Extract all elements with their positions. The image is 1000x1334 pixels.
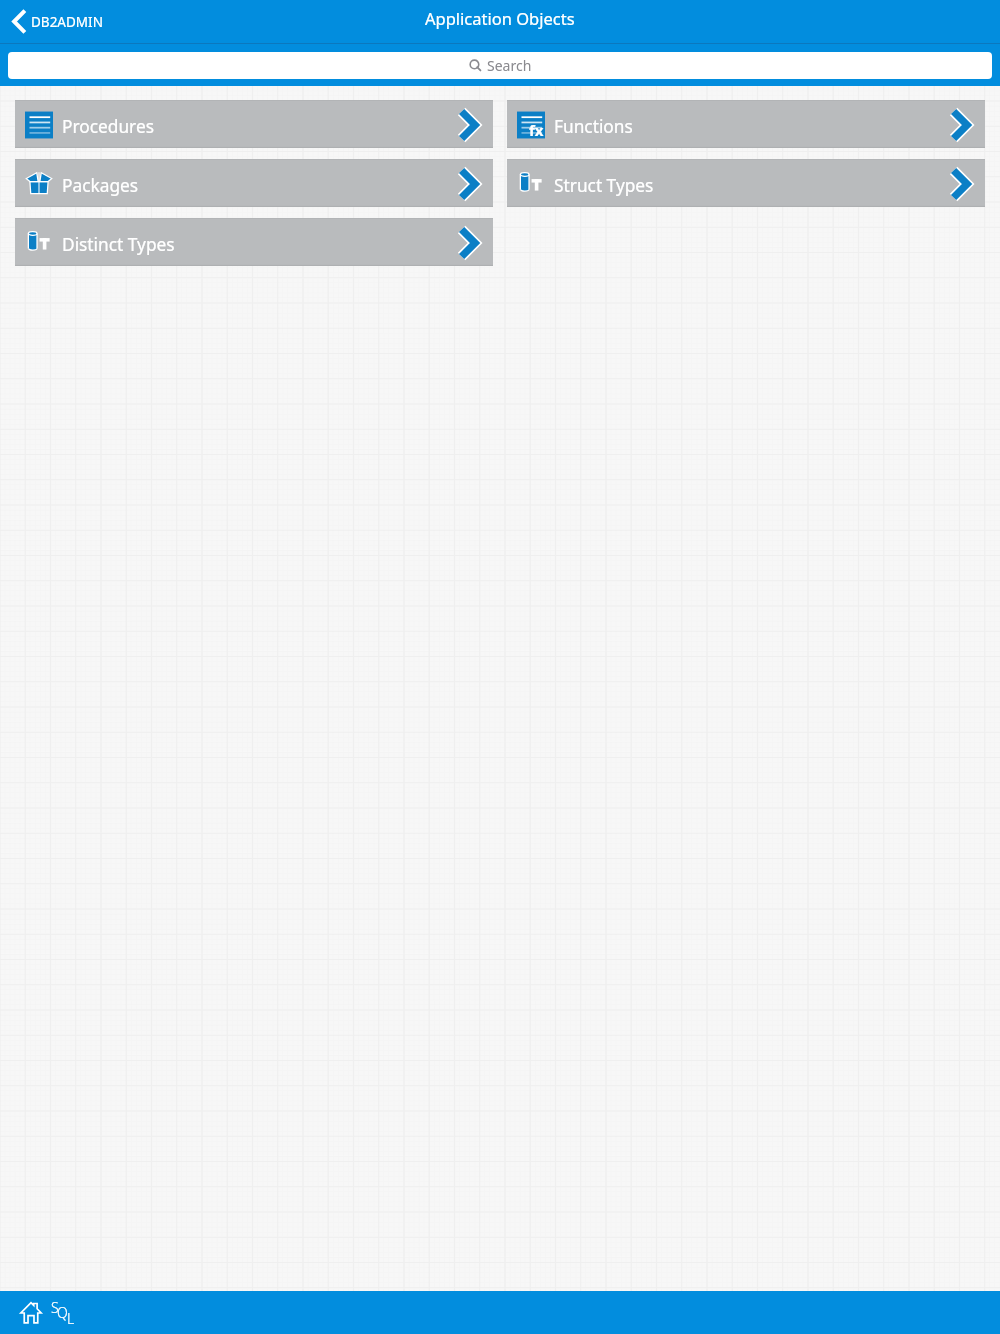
staticText: Struct Types: [554, 174, 654, 198]
staticText: DB2ADMIN: [31, 13, 103, 31]
button[interactable]: SQL: [51, 1297, 81, 1329]
staticText: S: [51, 1298, 59, 1317]
staticText: Distinct Types: [62, 233, 175, 257]
button[interactable]: fx: [507, 100, 985, 148]
staticText: fx: [529, 120, 544, 140]
button[interactable]: Procedures: [15, 100, 493, 148]
staticText: Procedures: [62, 115, 154, 139]
staticText: Q: [57, 1303, 68, 1322]
staticText: Packages: [62, 174, 139, 198]
staticText: Functions: [554, 115, 633, 139]
button[interactable]: Distinct Types: [15, 218, 493, 266]
staticText: L: [67, 1309, 75, 1328]
button[interactable]: DB2ADMIN: [0, 12, 113, 31]
staticText: Application Objects: [425, 7, 575, 29]
button[interactable]: Search: [8, 52, 992, 79]
button[interactable]: Struct Types: [507, 159, 985, 207]
button[interactable]: Home: [18, 1300, 44, 1326]
staticText: Search: [487, 56, 532, 75]
button[interactable]: Packages: [15, 159, 493, 207]
